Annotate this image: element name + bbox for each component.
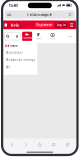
button[interactable]: More bbox=[66, 32, 74, 41]
staticText: Mis pedidos bbox=[5, 51, 22, 54]
staticText: Puntos bbox=[22, 36, 32, 39]
staticText: el-bricolaje.fr bbox=[30, 12, 53, 17]
staticText: Salir bbox=[5, 65, 10, 69]
button[interactable]: Search bbox=[4, 33, 20, 40]
staticText: bric bbox=[11, 22, 19, 28]
staticText: Log in bbox=[57, 23, 66, 27]
staticText: Registrarse bbox=[36, 23, 52, 27]
button[interactable]: Registrarse bbox=[35, 22, 54, 28]
button[interactable]: Log in bbox=[55, 22, 67, 28]
staticText: Tienda bbox=[36, 38, 41, 40]
button[interactable]: France bbox=[3, 43, 37, 49]
button[interactable]: Ayuda bbox=[50, 32, 55, 41]
button[interactable]: Mis pedidos bbox=[3, 49, 37, 56]
button[interactable]: Tienda bbox=[36, 32, 41, 41]
button[interactable]: Salir bbox=[3, 63, 37, 71]
staticText: aA bbox=[7, 12, 12, 17]
button[interactable]: Puntos bbox=[22, 32, 32, 41]
staticText: Ayuda bbox=[50, 38, 55, 40]
button[interactable]: Share bbox=[33, 140, 47, 149]
button[interactable]: el bricolaje home bbox=[3, 20, 19, 29]
staticText: France bbox=[10, 44, 18, 48]
staticText: Mis datos de entrega bbox=[5, 58, 34, 62]
button[interactable]: Text size bbox=[5, 10, 14, 18]
button[interactable]: Forward bbox=[19, 140, 33, 149]
staticText: 15:40 bbox=[9, 3, 18, 8]
button[interactable]: Back bbox=[5, 140, 19, 149]
button[interactable]: Reload bbox=[66, 10, 75, 18]
button[interactable]: Tabs bbox=[61, 140, 75, 149]
button[interactable]: Bookmarks bbox=[47, 140, 61, 149]
button[interactable]: Menu bbox=[69, 22, 74, 28]
button[interactable]: Mis datos de entrega bbox=[3, 56, 37, 63]
